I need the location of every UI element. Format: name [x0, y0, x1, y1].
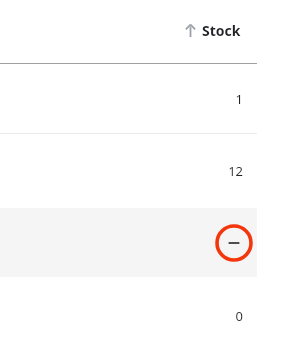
staticText: Stock — [202, 21, 241, 40]
button[interactable]: 0 — [0, 277, 285, 355]
button[interactable]: Stock — [0, 0, 285, 63]
button[interactable]: Decrease stock — [0, 208, 257, 277]
button[interactable]: Decrease stock — [214, 223, 254, 263]
button[interactable]: 12 — [0, 134, 285, 208]
staticText: 0 — [235, 307, 243, 325]
staticText: 1 — [235, 90, 243, 108]
staticText: 12 — [228, 162, 243, 180]
button[interactable]: 1 — [0, 64, 285, 133]
